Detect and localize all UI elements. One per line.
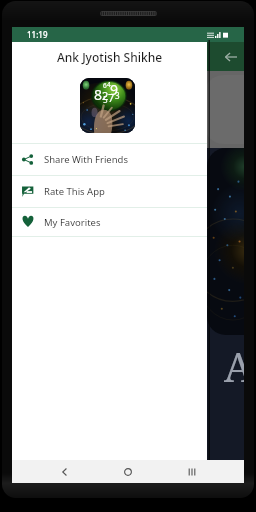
staticText: 7 <box>108 90 115 105</box>
button[interactable]: Recents <box>181 461 203 483</box>
button[interactable]: My Favorites <box>12 208 207 236</box>
staticText: Rate This App <box>44 185 105 198</box>
staticText: 2 <box>102 88 109 103</box>
button[interactable]: Rate This App <box>12 176 207 207</box>
staticText: 3 <box>115 90 120 101</box>
button[interactable]: Back <box>54 461 76 483</box>
staticText: 5 <box>103 94 108 105</box>
staticText: Share With Friends <box>44 153 128 166</box>
button[interactable]: Home <box>117 461 139 483</box>
button[interactable]: Back <box>222 48 240 66</box>
staticText: 8 <box>94 85 103 104</box>
staticText: Ank <box>224 339 244 393</box>
staticText: Ank Jyotish Shikhe <box>12 49 207 65</box>
staticText: 6 <box>103 81 107 90</box>
staticText: 4 <box>107 80 111 89</box>
button[interactable]: Share With Friends <box>12 144 207 175</box>
staticText: My Favorites <box>44 216 101 229</box>
staticText: 11:19 <box>27 29 48 40</box>
staticText: 9 <box>110 80 119 99</box>
